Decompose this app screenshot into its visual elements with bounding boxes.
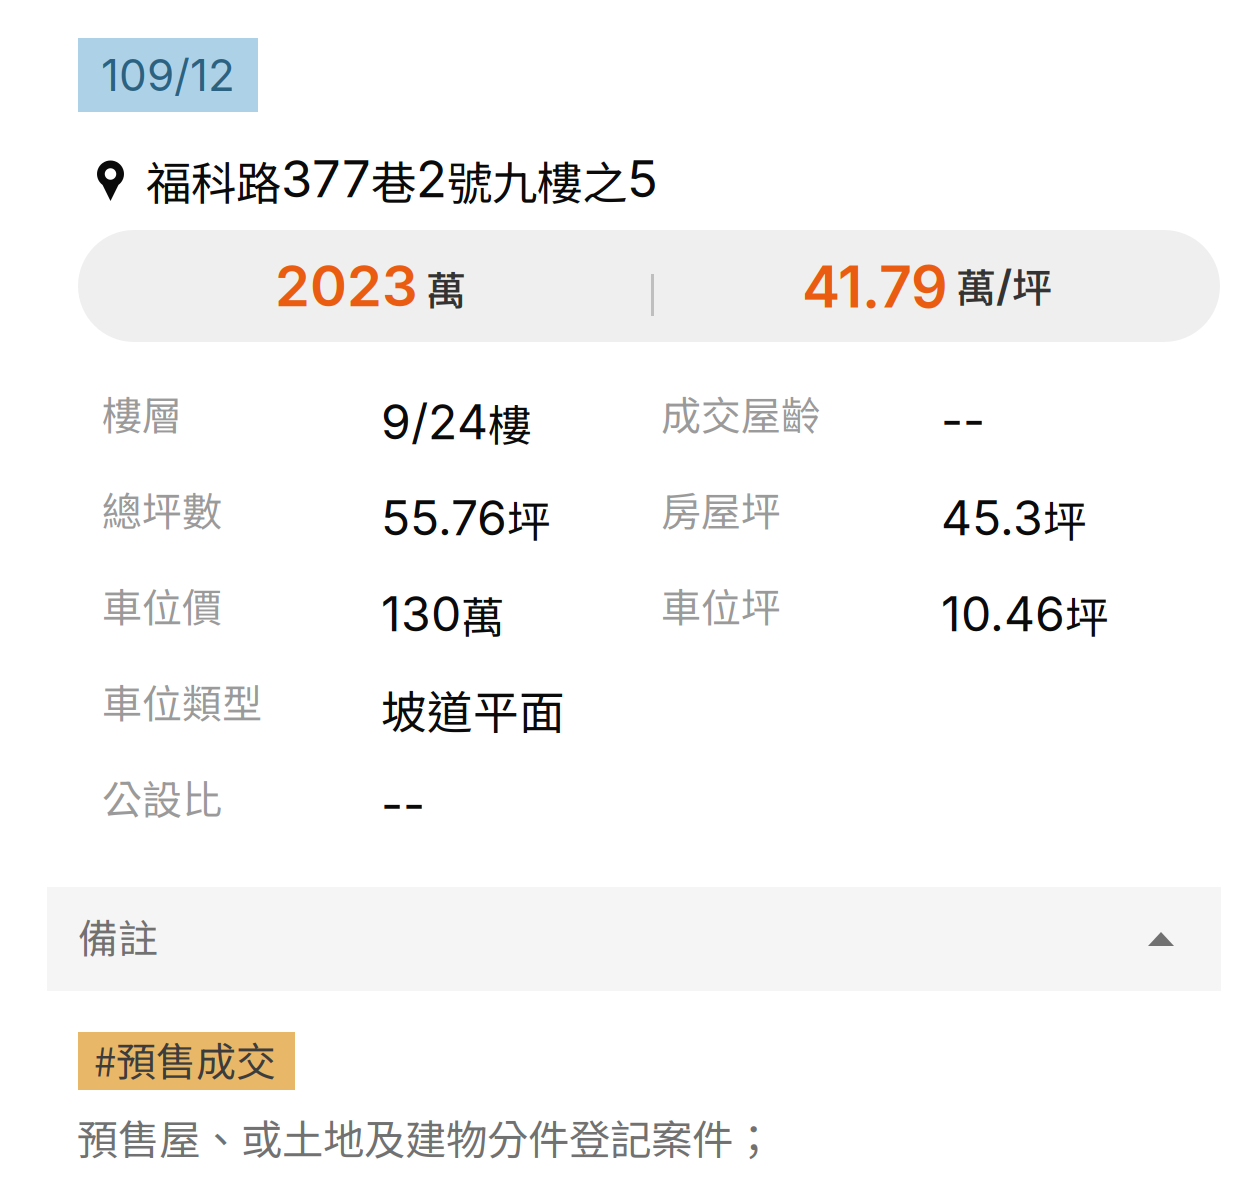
staticText: 10.46坪 (941, 584, 1108, 645)
staticText: 總坪數 (102, 480, 222, 538)
staticText: 45.3坪 (941, 488, 1086, 549)
staticText: 車位坪 (661, 576, 781, 634)
staticText: 房屋坪 (661, 480, 781, 538)
staticText: 55.76坪 (381, 488, 550, 549)
staticText: 109/12 (101, 48, 235, 102)
staticText: 車位類型 (102, 672, 262, 730)
staticText: 9/24樓 (381, 392, 531, 453)
staticText: -- (941, 392, 985, 449)
staticText: 福科路377巷2號九樓之5 (146, 148, 658, 212)
staticText: 成交屋齡 (661, 384, 821, 442)
staticText: 備註 (78, 907, 158, 965)
staticText: #預售成交 (94, 1030, 276, 1088)
staticText: 車位價 (102, 576, 222, 634)
button[interactable]: 備註 (47, 887, 1221, 991)
staticText: 萬/坪 (956, 257, 1052, 313)
staticText: -- (381, 776, 425, 833)
staticText: 坡道平面 (381, 677, 565, 741)
staticText: 萬 (426, 259, 466, 317)
staticText: 2023 (275, 252, 418, 320)
staticText: 公設比 (102, 768, 222, 826)
staticText: 41.79 (802, 252, 948, 321)
staticText: 130萬 (381, 584, 504, 645)
staticText: 預售屋、或土地及建物分件登記案件； (77, 1107, 774, 1167)
staticText: 樓層 (102, 384, 182, 442)
